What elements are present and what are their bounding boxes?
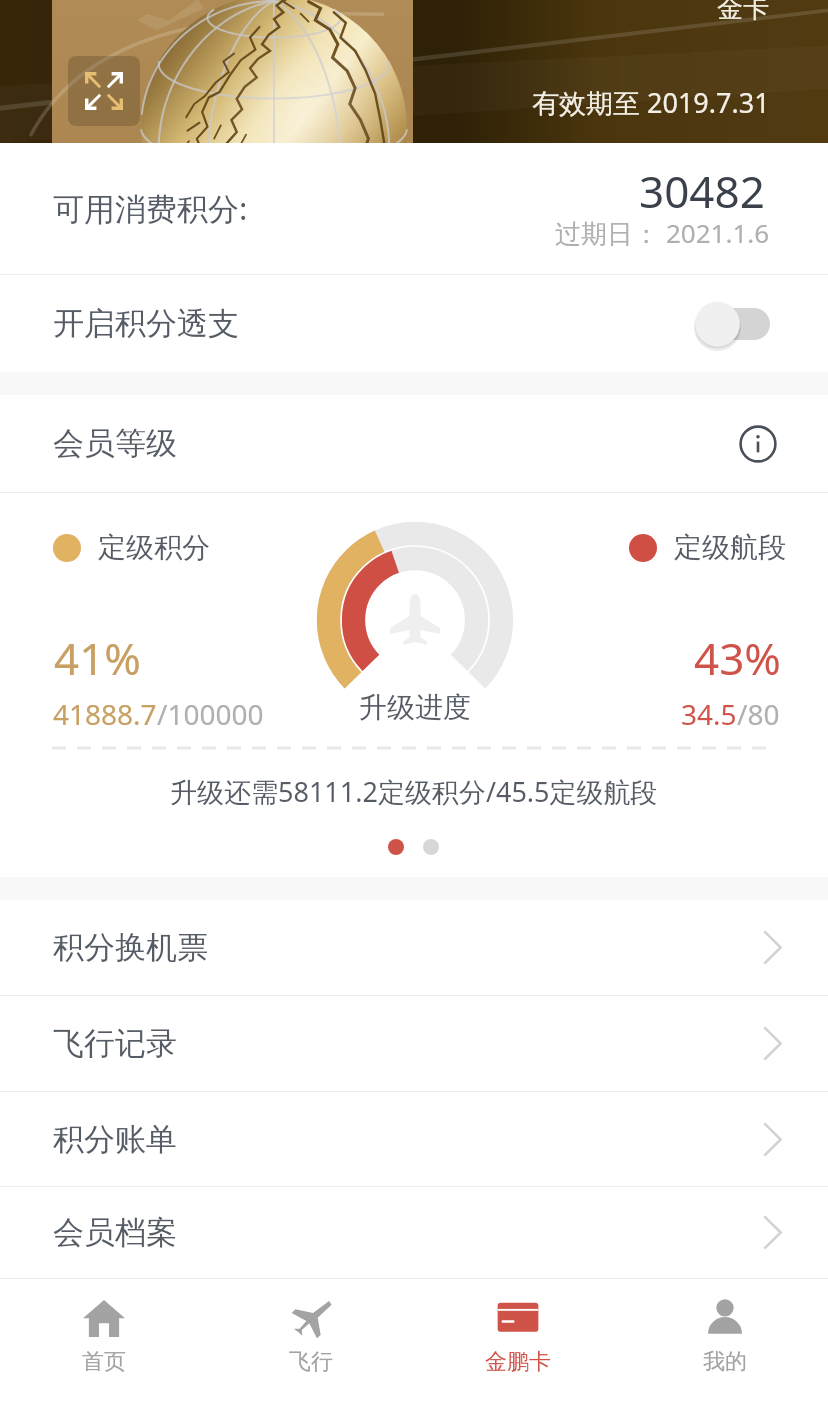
staticText: 金鹏卡 <box>485 1348 551 1376</box>
staticText: 飞行记录 <box>53 1024 177 1063</box>
button[interactable]: 我的 <box>621 1279 828 1420</box>
staticText: 金卡 <box>717 0 769 25</box>
button[interactable]: 积分换机票 <box>0 900 828 995</box>
button[interactable]: 积分账单 <box>0 1092 828 1186</box>
staticText: 开启积分透支 <box>53 304 239 343</box>
button[interactable]: 金鹏卡 <box>414 1279 621 1420</box>
staticText: 定级航段 <box>674 530 786 565</box>
staticText: 会员档案 <box>53 1213 177 1252</box>
staticText: 可用消费积分: <box>53 187 248 229</box>
staticText: 升级还需58111.2定级积分/45.5定级航段 <box>170 773 658 810</box>
button[interactable]: 飞行记录 <box>0 996 828 1091</box>
button[interactable]: 可用消费积分: <box>0 143 828 274</box>
staticText: 有效期至 2019.7.31 <box>532 84 770 121</box>
staticText: 43% <box>694 628 781 688</box>
staticText: 飞行 <box>289 1348 333 1376</box>
staticText: 定级积分 <box>98 530 210 565</box>
staticText: 41% <box>54 628 141 688</box>
staticText: 首页 <box>82 1348 126 1376</box>
staticText: 过期日： <box>555 215 666 251</box>
button[interactable]: Expand card <box>68 56 140 126</box>
staticText: 34.5 <box>681 695 737 733</box>
button[interactable]: 会员档案 <box>0 1187 828 1278</box>
staticText: 我的 <box>703 1348 747 1376</box>
staticText: /80 <box>737 695 780 733</box>
staticText: 积分换机票 <box>53 928 208 967</box>
button[interactable]: 会员等级 <box>0 395 828 492</box>
staticText: 会员等级 <box>53 424 177 463</box>
staticText: 41888.7 <box>53 695 157 733</box>
staticText: 积分账单 <box>53 1120 177 1159</box>
staticText: 30482 <box>639 161 765 221</box>
button[interactable]: 首页 <box>0 1279 207 1420</box>
staticText: 2021.1.6 <box>666 215 770 250</box>
staticText: /100000 <box>157 695 264 733</box>
button[interactable]: Membership level info <box>736 422 780 466</box>
staticText: 升级进度 <box>359 690 471 725</box>
button[interactable]: 开启积分透支 <box>0 275 828 372</box>
button[interactable]: 飞行 <box>207 1279 414 1420</box>
